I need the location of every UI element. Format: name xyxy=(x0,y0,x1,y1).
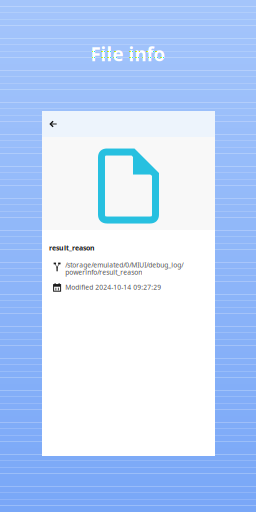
staticText: result_reason xyxy=(49,243,95,252)
button[interactable]: Back xyxy=(42,111,65,137)
staticText: /storage/emulated/0/MIUI/debug_log/ xyxy=(65,260,183,269)
staticText: Modified 2024-10-14 09:27:29 xyxy=(65,283,161,292)
staticText: powerinfo/result_reason xyxy=(65,267,142,277)
staticText: File info xyxy=(90,42,165,66)
